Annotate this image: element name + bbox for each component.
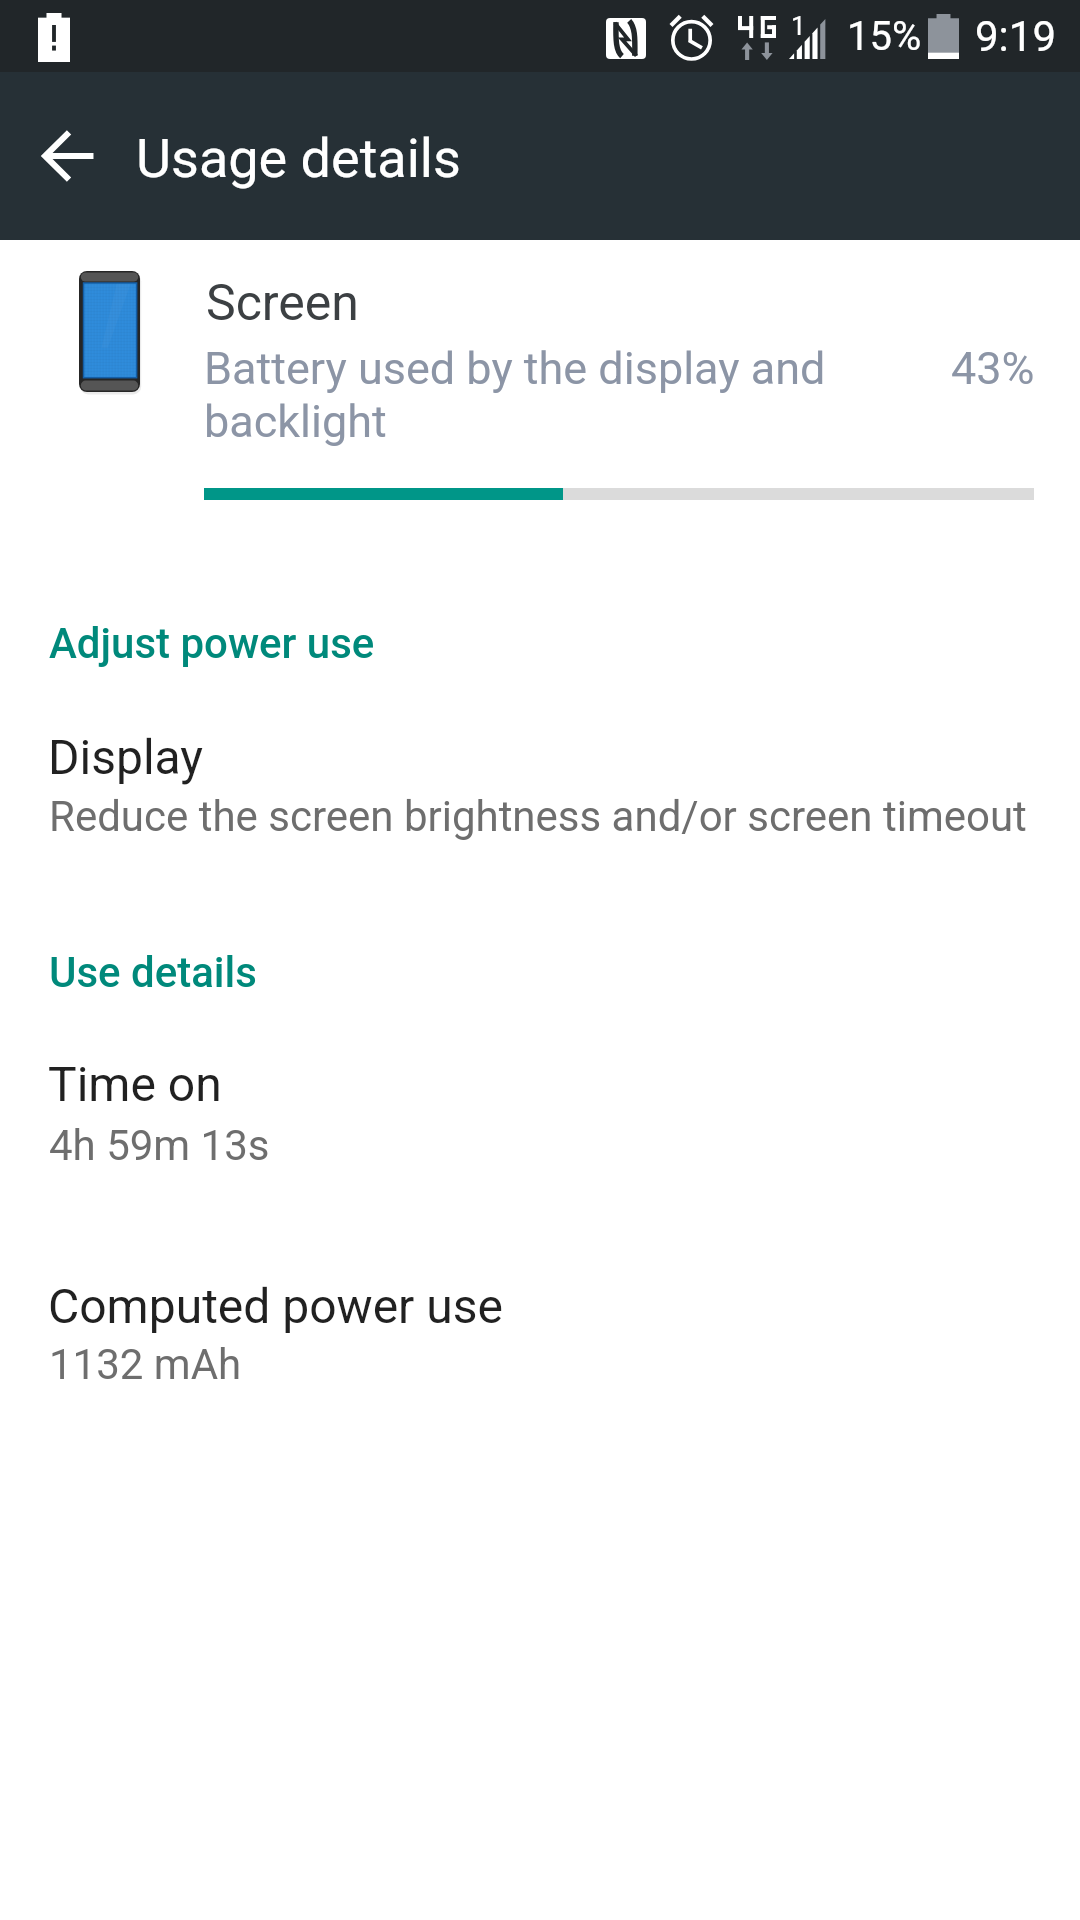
staticText: Screen — [206, 274, 359, 333]
staticText: 4h 59m 13s — [49, 1121, 270, 1170]
button[interactable]: Computed power use — [0, 1260, 1080, 1410]
staticText: Time on — [48, 1056, 222, 1112]
staticText: 9:19 — [975, 12, 1056, 61]
button[interactable]: Back — [16, 104, 120, 208]
staticText: Usage details — [136, 127, 461, 190]
staticText: Computed power use — [48, 1278, 503, 1334]
staticText: Use details — [49, 948, 257, 997]
button[interactable]: Time on — [0, 1040, 1080, 1190]
button[interactable]: Display — [0, 710, 1080, 860]
staticText: Reduce the screen brightness and/or scre… — [49, 792, 1027, 841]
staticText: 15% — [847, 13, 922, 60]
staticText: Battery used by the display and backligh… — [204, 342, 826, 448]
staticText: 43% — [951, 342, 1035, 395]
staticText: 1132 mAh — [49, 1340, 242, 1389]
button[interactable]: Screen — [0, 240, 1080, 530]
staticText: 1 — [791, 11, 806, 41]
staticText: Adjust power use — [49, 619, 375, 668]
staticText: Display — [48, 729, 204, 785]
